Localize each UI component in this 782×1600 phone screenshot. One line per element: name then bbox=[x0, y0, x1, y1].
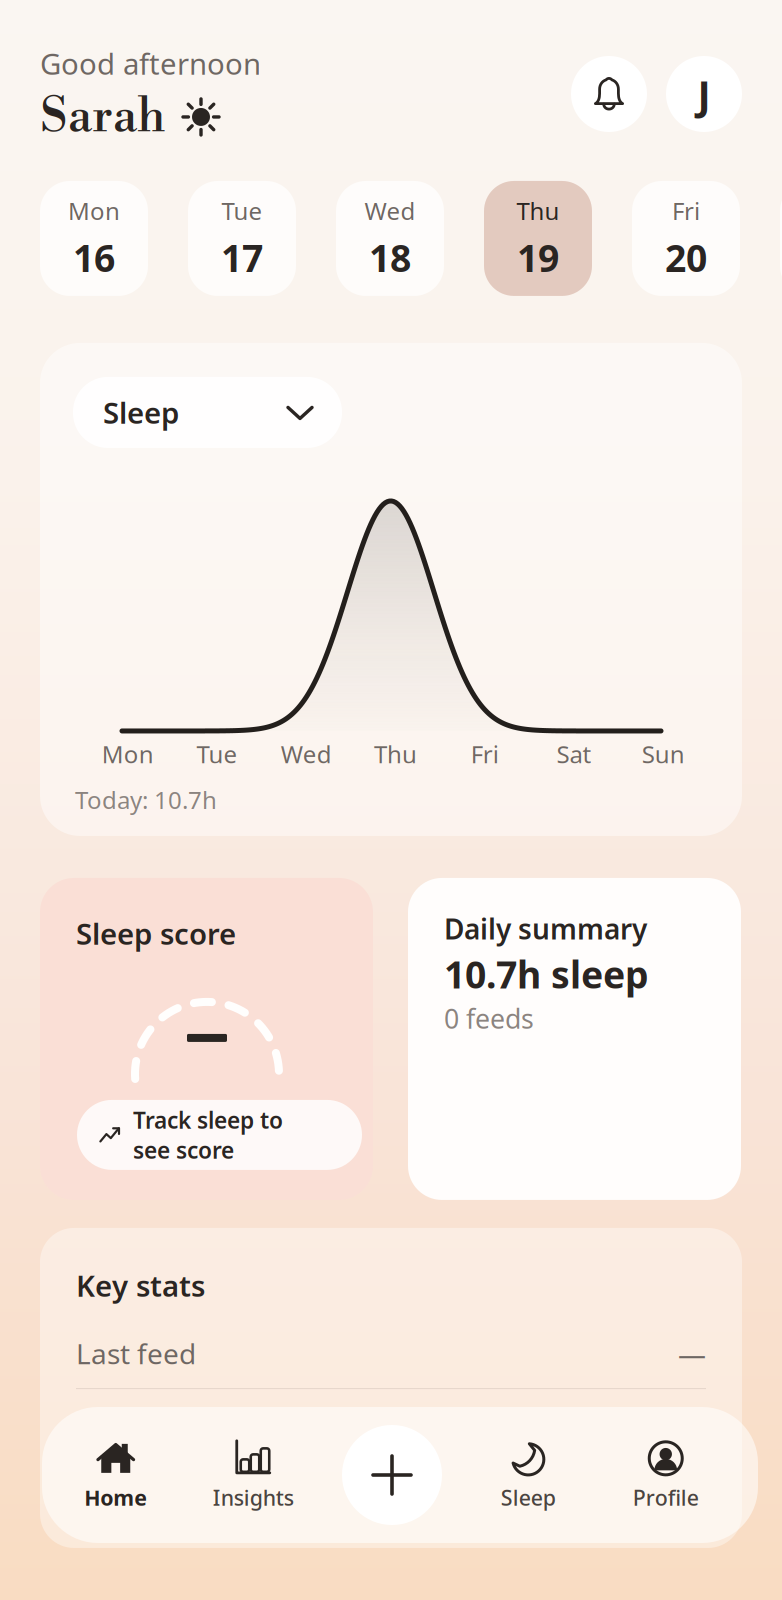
staticText: Good afternoon bbox=[40, 44, 261, 83]
staticText: Wed bbox=[364, 195, 415, 227]
staticText: — bbox=[678, 1335, 706, 1372]
staticText: Key stats bbox=[76, 1266, 205, 1305]
staticText: Tue bbox=[221, 195, 262, 227]
staticText: Today: 10.7h bbox=[75, 784, 217, 816]
staticText: Daily summary bbox=[444, 910, 647, 947]
staticText: Home bbox=[84, 1483, 147, 1512]
staticText: Sarah bbox=[40, 87, 166, 147]
staticText: J bbox=[697, 67, 710, 120]
staticText: 10.7h sleep bbox=[444, 949, 649, 999]
staticText: Sun bbox=[642, 738, 685, 770]
staticText: 19 bbox=[517, 233, 559, 282]
staticText: 17 bbox=[221, 233, 263, 282]
button[interactable]: Notifications bbox=[571, 56, 647, 132]
button[interactable]: Add entry bbox=[342, 1425, 442, 1525]
staticText: Fri bbox=[471, 738, 499, 770]
staticText: Thu bbox=[374, 738, 417, 770]
staticText: Profile bbox=[633, 1483, 699, 1512]
button[interactable]: Sat bbox=[780, 181, 782, 296]
staticText: Sleep score bbox=[76, 914, 236, 953]
staticText: Sleep bbox=[501, 1483, 556, 1512]
staticText: Track sleep to see score bbox=[133, 1105, 283, 1165]
button[interactable]: Mon bbox=[40, 181, 148, 296]
staticText: Fri bbox=[672, 195, 700, 227]
staticText: Sat bbox=[557, 738, 592, 770]
staticText: Sleep bbox=[103, 393, 179, 432]
button[interactable]: Track sleep to see score bbox=[77, 1100, 362, 1170]
button[interactable]: Sleep bbox=[459, 1407, 597, 1543]
staticText: 18 bbox=[369, 233, 411, 282]
button[interactable]: Fri bbox=[632, 181, 740, 296]
staticText: 0 feeds bbox=[444, 1001, 534, 1036]
staticText: 16 bbox=[73, 233, 115, 282]
staticText: Mon bbox=[68, 195, 120, 227]
button[interactable]: Wed bbox=[336, 181, 444, 296]
button[interactable]: Account bbox=[666, 56, 742, 132]
button[interactable]: Thu bbox=[484, 181, 592, 296]
staticText: Mon bbox=[102, 738, 154, 770]
staticText: Wed bbox=[281, 738, 332, 770]
staticText: Thu bbox=[516, 195, 559, 227]
button[interactable]: Home bbox=[47, 1407, 184, 1543]
staticText: Last feed bbox=[76, 1335, 196, 1372]
button[interactable]: Tue bbox=[188, 181, 296, 296]
staticText: Tue bbox=[196, 738, 237, 770]
button[interactable]: Sleep bbox=[73, 377, 342, 448]
staticText: 20 bbox=[665, 233, 707, 282]
staticText: Insights bbox=[213, 1483, 294, 1512]
button[interactable]: Profile bbox=[597, 1407, 734, 1543]
button[interactable]: Insights bbox=[184, 1407, 322, 1543]
